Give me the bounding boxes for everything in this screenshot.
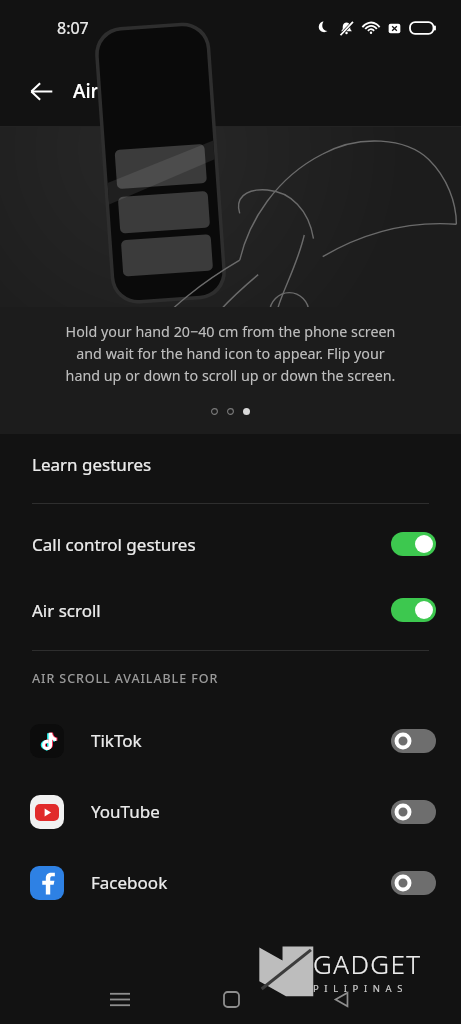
button[interactable]: Facebook (0, 847, 461, 918)
staticText: Air scroll (32, 599, 391, 622)
staticText: YouTube (91, 800, 391, 823)
staticText: TikTok (91, 729, 391, 752)
button[interactable] (391, 729, 436, 753)
staticText: AIR SCROLL AVAILABLE FOR (32, 670, 219, 687)
button[interactable] (391, 871, 436, 895)
staticText: Call control gestures (32, 533, 391, 556)
button[interactable] (391, 800, 436, 824)
button[interactable]: YouTube (0, 776, 461, 847)
button[interactable]: Back (319, 977, 363, 1021)
button[interactable] (391, 598, 436, 622)
button[interactable] (391, 532, 436, 556)
staticText: PILIPINAS (313, 982, 409, 995)
staticText: 8:07 (57, 17, 89, 39)
staticText: Facebook (91, 871, 391, 894)
staticText: GADGET (313, 946, 422, 981)
button[interactable]: TikTok (0, 705, 461, 776)
button[interactable]: Home (209, 977, 253, 1021)
staticText: Hold your hand 20−40 cm from the phone s… (28, 322, 433, 386)
button[interactable]: Back (21, 71, 61, 111)
button[interactable]: Learn gestures (0, 434, 461, 494)
button[interactable]: Call control gestures (0, 511, 461, 577)
staticText: Air Gestures (73, 78, 185, 104)
button[interactable]: Air scroll (0, 577, 461, 643)
button[interactable]: Recent apps (98, 977, 142, 1021)
staticText: Learn gestures (32, 453, 152, 476)
